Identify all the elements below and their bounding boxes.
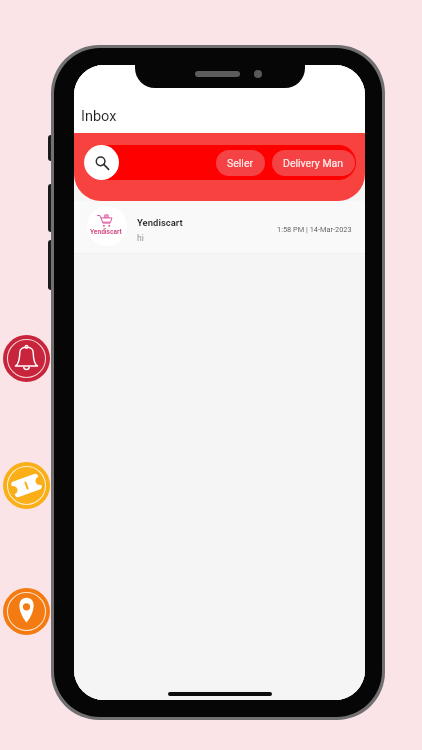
staticText: Yendiscart: [90, 228, 122, 236]
staticText: Seller: [227, 157, 254, 169]
button[interactable]: Delivery Man: [272, 150, 355, 176]
staticText: 1:58 PM | 14-Mar-2023: [277, 225, 352, 234]
button[interactable]: Location: [3, 588, 50, 635]
button[interactable]: Search: [84, 145, 119, 180]
staticText: Yendiscart: [137, 217, 183, 228]
button[interactable]: Yendiscart: [74, 201, 365, 250]
button[interactable]: Notifications: [3, 335, 50, 382]
button[interactable]: Seller: [216, 150, 265, 176]
button[interactable]: Offers: [3, 462, 50, 509]
staticText: hi: [137, 233, 144, 243]
staticText: Inbox: [81, 108, 117, 125]
staticText: Delivery Man: [283, 157, 344, 169]
